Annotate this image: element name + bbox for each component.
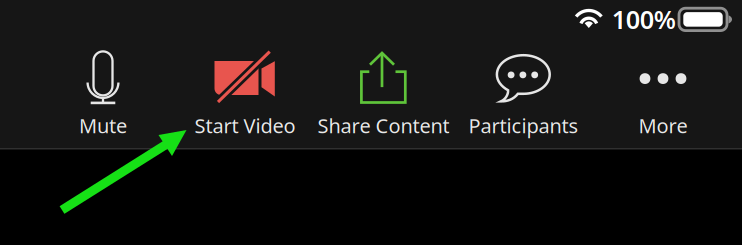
staticText: Start Video — [194, 112, 295, 139]
button[interactable]: Participants — [449, 39, 597, 147]
staticText: Mute — [79, 112, 127, 139]
button[interactable]: Share Content — [309, 39, 457, 147]
staticText: Participants — [468, 112, 578, 139]
button[interactable]: More — [589, 39, 737, 147]
staticText: More — [638, 112, 687, 139]
button[interactable]: Start Video — [171, 39, 319, 147]
staticText: 100% — [612, 2, 676, 36]
button[interactable]: Mute — [29, 39, 177, 147]
staticText: Share Content — [317, 112, 449, 139]
